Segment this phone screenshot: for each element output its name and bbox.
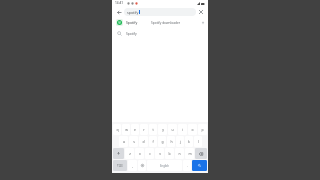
button[interactable]: l [194,136,202,147]
button[interactable]: v [155,148,164,159]
button[interactable]: Clear [197,8,205,16]
staticText: Spotify [126,31,137,35]
staticText: English [160,164,169,168]
staticText: c [149,151,151,156]
staticText: Spotify [126,20,138,25]
staticText: b [168,151,171,156]
button[interactable]: j [176,136,184,147]
staticText: z [129,151,131,156]
staticText: i [182,127,183,132]
button[interactable]: w [122,124,130,135]
button[interactable]: f [149,136,157,147]
staticText: w [125,127,128,132]
staticText: a [123,139,125,144]
staticText: l [198,139,199,144]
button[interactable]: z [125,148,134,159]
staticText: m [188,151,192,156]
button[interactable]: p [198,124,207,135]
button[interactable]: , [128,160,137,171]
button[interactable]: a [119,136,128,147]
staticText: o [191,127,194,132]
staticText: , [132,163,133,168]
button[interactable]: q [113,124,121,135]
staticText: d [142,139,145,144]
staticText: s [133,139,135,144]
button[interactable]: English [147,160,182,171]
staticText: q [116,127,119,132]
staticText: h [170,139,173,144]
button[interactable]: t [149,124,157,135]
button[interactable]: s [129,136,138,147]
button[interactable]: r [140,124,148,135]
button[interactable]: i [178,124,187,135]
staticText: p [201,127,204,132]
button[interactable]: m [185,148,194,159]
button[interactable]: Spotify [112,28,208,38]
button[interactable]: Shift [113,148,124,159]
staticText: n [178,151,181,156]
staticText: r [143,127,145,132]
button[interactable]: h [167,136,175,147]
button[interactable]: n [175,148,184,159]
staticText: g [161,139,164,144]
button[interactable]: Search [192,160,207,171]
staticText: Spotify downloader [151,21,201,25]
button[interactable]: e [131,124,139,135]
button[interactable]: c [145,148,154,159]
button[interactable]: x [135,148,144,159]
staticText: y [162,127,164,132]
staticText: v [159,151,161,156]
button[interactable]: Voice input [138,160,146,171]
button[interactable]: Backspace [195,148,207,159]
staticText: x [139,151,141,156]
button[interactable]: y [158,124,167,135]
button[interactable]: k [185,136,193,147]
staticText: spotify [127,10,139,15]
button[interactable]: d [139,136,148,147]
staticText: t [152,127,154,132]
staticText: ?123 [117,164,123,168]
staticText: 14:41 [115,1,124,5]
button[interactable]: Symbols [113,160,127,171]
staticText: u [171,127,174,132]
staticText: . [187,163,188,168]
staticText: f [152,139,154,144]
button[interactable]: Spotify [112,17,208,28]
staticText: k [188,139,190,144]
button[interactable]: Back [115,8,123,16]
button[interactable]: u [168,124,177,135]
button[interactable]: spotify [124,8,196,16]
button[interactable]: b [165,148,174,159]
button[interactable]: o [188,124,197,135]
button[interactable]: g [158,136,166,147]
staticText: j [180,139,181,144]
staticText: e [134,127,136,132]
